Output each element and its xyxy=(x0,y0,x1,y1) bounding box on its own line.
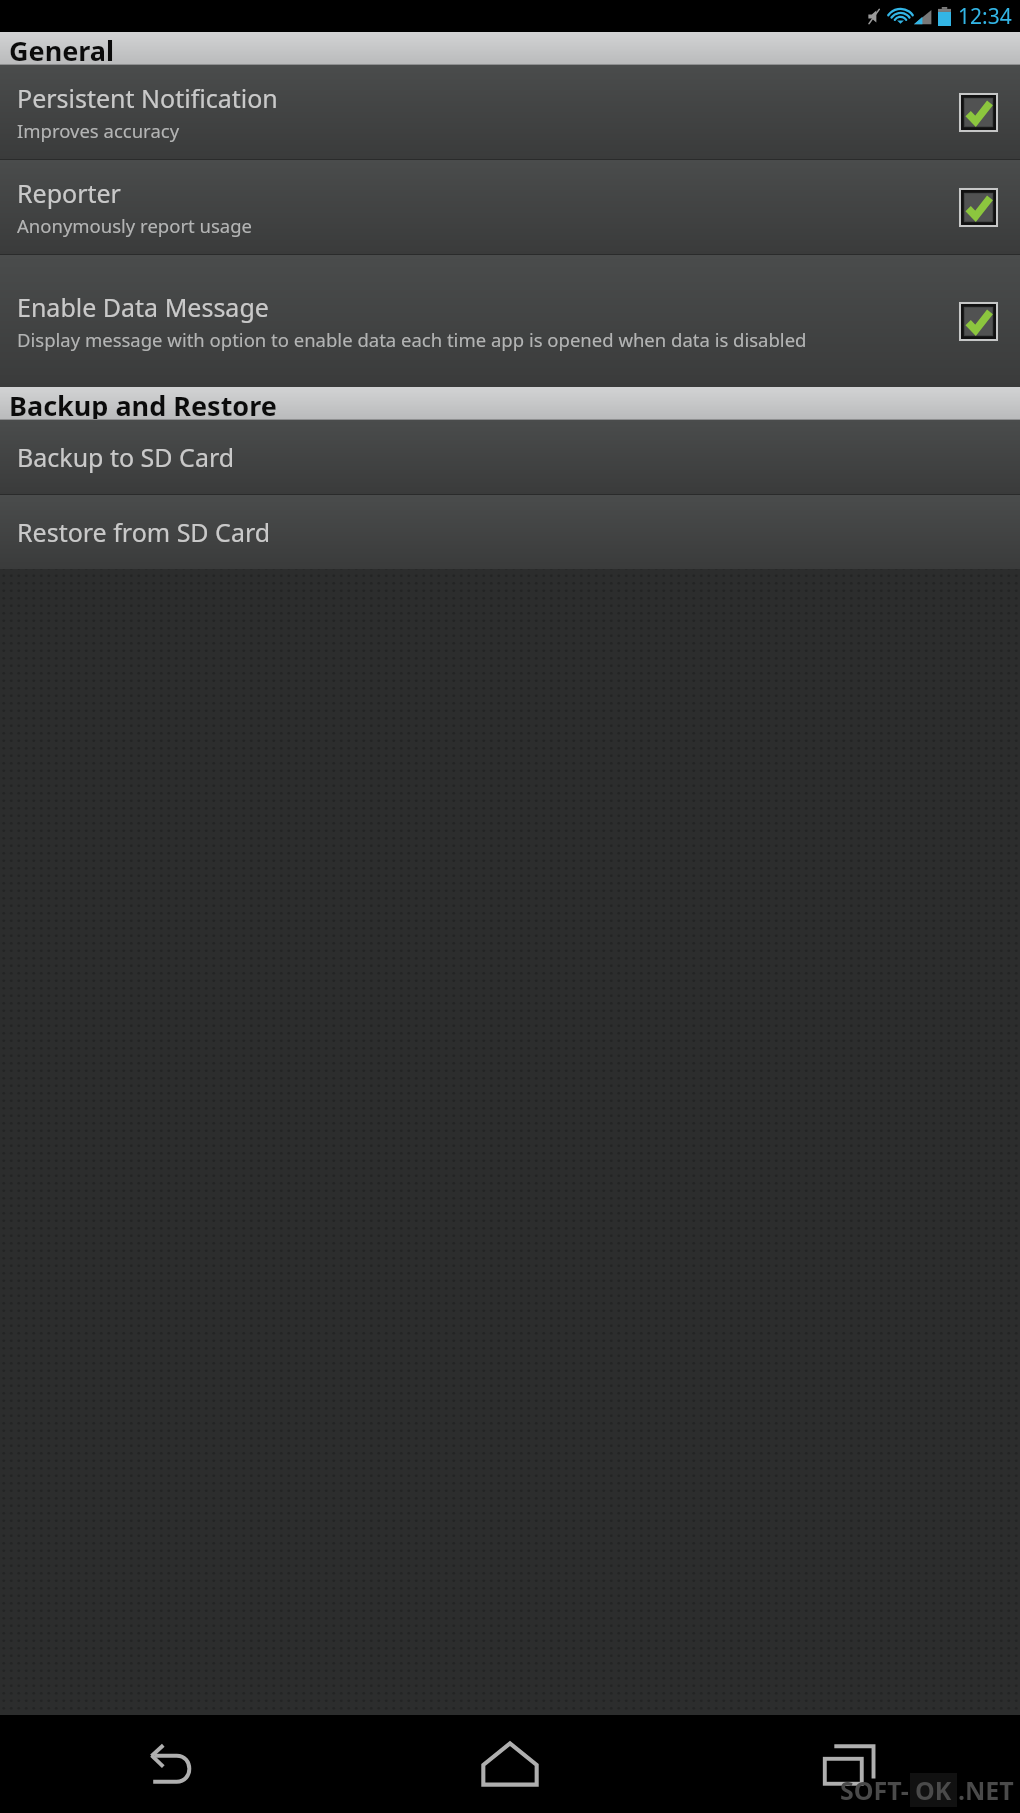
staticText: Improves accuracy xyxy=(17,118,180,143)
staticText: General xyxy=(9,32,115,64)
staticText: Display message with option to enable da… xyxy=(17,327,807,352)
button[interactable]: Backup to SD Card xyxy=(0,420,1020,494)
staticText: OK xyxy=(915,1773,952,1807)
staticText: Reporter xyxy=(17,176,121,210)
staticText: Anonymously report usage xyxy=(17,213,253,238)
button[interactable]: Restore from SD Card xyxy=(0,495,1020,569)
button[interactable]: Recent apps xyxy=(680,1715,1020,1813)
button[interactable]: Home xyxy=(340,1715,680,1813)
staticText: 12:34 xyxy=(958,2,1012,31)
button[interactable]: Persistent Notification xyxy=(960,94,997,131)
button[interactable]: Reporter xyxy=(960,189,997,226)
staticText: Restore from SD Card xyxy=(17,515,271,549)
button[interactable]: Enable Data Message xyxy=(0,255,1020,387)
staticText: Enable Data Message xyxy=(17,290,269,324)
button[interactable]: Persistent Notification xyxy=(0,65,1020,159)
staticText: Backup and Restore xyxy=(9,387,277,419)
staticText: .NET xyxy=(958,1773,1014,1807)
button[interactable]: Back xyxy=(0,1715,340,1813)
staticText: SOFT- xyxy=(840,1773,909,1807)
button[interactable]: Reporter xyxy=(0,160,1020,254)
staticText: Persistent Notification xyxy=(17,81,278,115)
button[interactable]: Enable Data Message xyxy=(960,303,997,340)
staticText: Backup to SD Card xyxy=(17,440,235,474)
